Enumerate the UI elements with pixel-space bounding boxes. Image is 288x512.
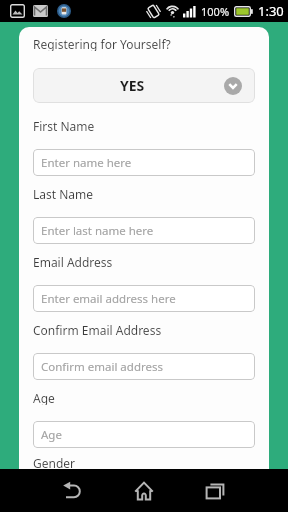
staticText: 1:30 (258, 2, 284, 20)
staticText: Confirm email address (41, 359, 163, 375)
staticText: Gender (33, 455, 76, 469)
staticText: Last Name (33, 186, 94, 201)
staticText: YES (120, 76, 145, 95)
staticText: Age (33, 390, 55, 405)
staticText: Enter email address here (41, 291, 176, 307)
staticText: 100% (201, 4, 230, 19)
staticText: First Name (33, 118, 95, 133)
button[interactable] (129, 469, 159, 512)
button[interactable] (58, 469, 88, 512)
staticText: Enter last name here (41, 223, 154, 239)
button[interactable]: Enter last name here (33, 217, 255, 244)
button[interactable]: Enter email address here (33, 285, 255, 312)
staticText: Email Address (33, 254, 113, 269)
button[interactable]: Confirm email address (33, 353, 255, 380)
button[interactable]: Enter name here (33, 149, 255, 176)
staticText: Confirm Email Address (33, 322, 162, 337)
staticText: Enter name here (41, 155, 132, 171)
button[interactable]: Age (33, 421, 255, 448)
button[interactable]: YES (33, 68, 255, 103)
staticText: Age (41, 427, 62, 443)
button[interactable] (200, 469, 230, 512)
staticText: Registering for Yourself? (33, 36, 171, 51)
